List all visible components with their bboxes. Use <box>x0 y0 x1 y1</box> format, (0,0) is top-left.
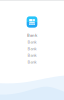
staticText: Bank <box>27 53 36 58</box>
staticText: Bank <box>27 32 37 38</box>
staticText: Bank <box>27 59 36 65</box>
staticText: Bank <box>27 39 36 44</box>
staticText: Bank <box>27 46 36 51</box>
